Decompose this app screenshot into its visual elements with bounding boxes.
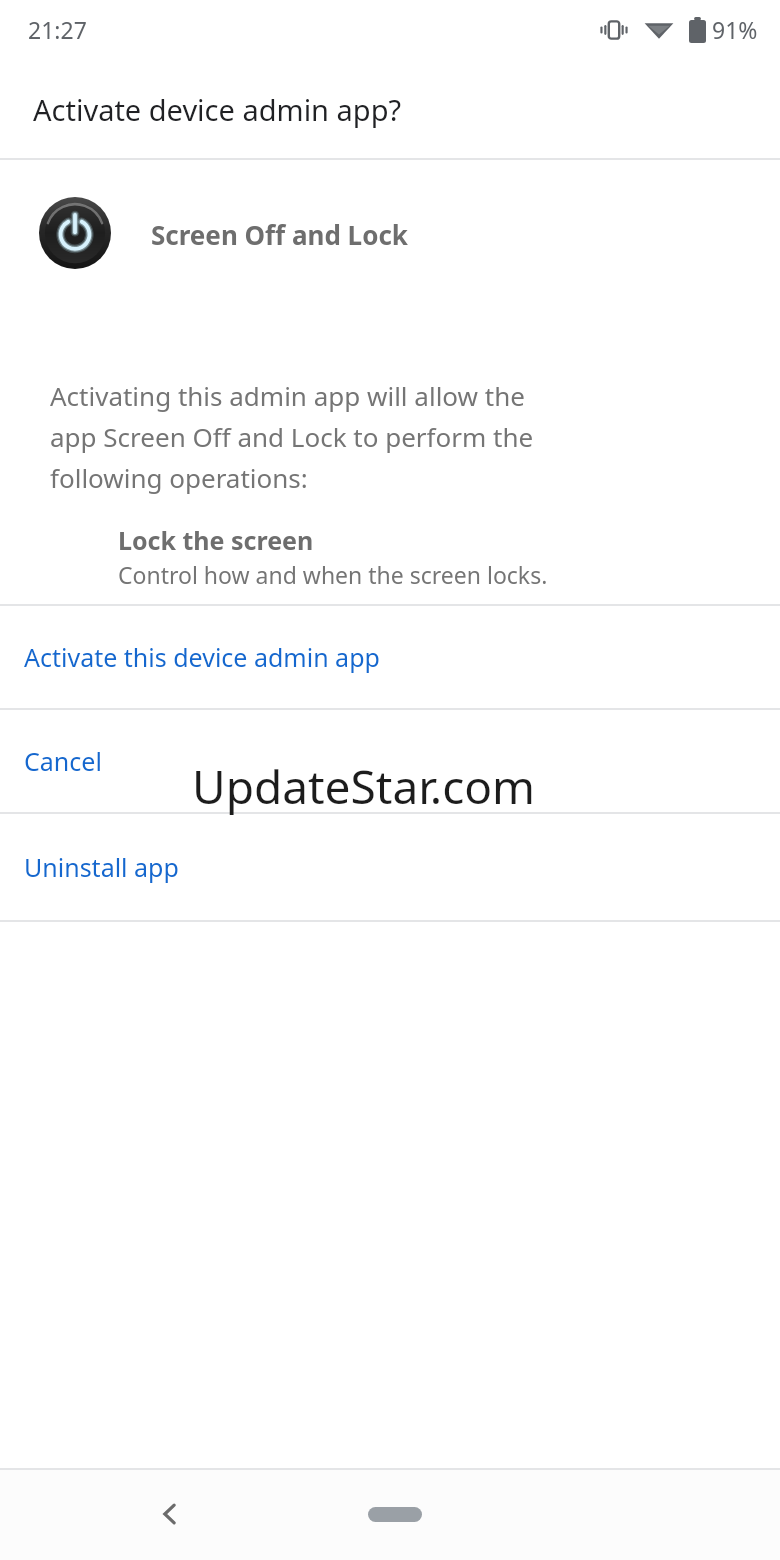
button[interactable]: Activate this device admin app bbox=[0, 605, 780, 708]
button[interactable]: Uninstall app bbox=[0, 813, 780, 920]
staticText: 21:27 bbox=[28, 14, 87, 45]
button[interactable]: Home bbox=[340, 1468, 450, 1560]
staticText: Lock the screen bbox=[118, 523, 314, 557]
staticText: Activate this device admin app bbox=[24, 640, 380, 674]
staticText: following operations: bbox=[50, 460, 308, 495]
staticText: 91% bbox=[712, 14, 758, 45]
staticText: Activate device admin app? bbox=[33, 90, 402, 129]
staticText: Control how and when the screen locks. bbox=[118, 559, 548, 590]
button[interactable]: Cancel bbox=[0, 709, 780, 812]
staticText: Uninstall app bbox=[24, 850, 179, 884]
staticText: UpdateStar.com bbox=[192, 755, 536, 818]
button[interactable]: Back bbox=[130, 1468, 210, 1560]
staticText: Cancel bbox=[24, 744, 102, 778]
staticText: Activating this admin app will allow the bbox=[50, 378, 525, 413]
staticText: app Screen Off and Lock to perform the bbox=[50, 419, 534, 454]
staticText: Screen Off and Lock bbox=[151, 217, 408, 252]
